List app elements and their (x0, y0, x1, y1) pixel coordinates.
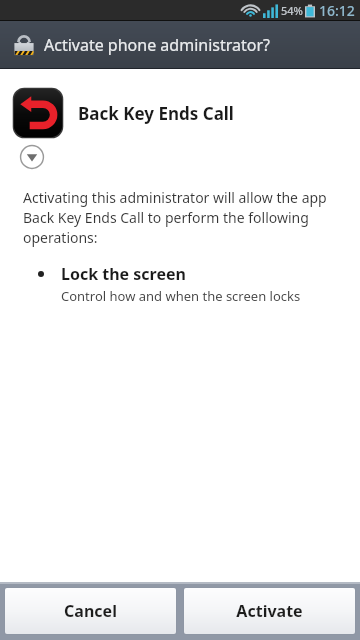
staticText: Activate (236, 600, 303, 622)
button[interactable]: Expand details (19, 144, 45, 170)
staticText: Control how and when the screen locks (61, 287, 301, 305)
staticText: Cancel (64, 600, 117, 622)
staticText: Activating this administrator will allow… (23, 188, 338, 247)
button[interactable]: Cancel (5, 588, 176, 634)
staticText: Lock the screen (61, 263, 186, 285)
staticText: Activate phone administrator? (44, 34, 270, 56)
button[interactable]: Activate (184, 588, 355, 634)
staticText: Back Key Ends Call (78, 102, 234, 125)
staticText: 54% (281, 3, 303, 18)
staticText: 16:12 (319, 1, 355, 20)
